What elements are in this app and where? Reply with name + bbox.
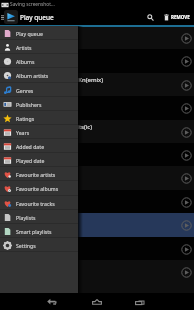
- button[interactable]: Play track: [178, 124, 194, 140]
- staticText: Play queue: [20, 13, 54, 22]
- staticText: Publishers: [16, 101, 42, 108]
- staticText: Playlists: [16, 214, 36, 221]
- staticText: Artist — Album: [5, 226, 41, 233]
- button[interactable]: Smart playlists: [0, 224, 78, 238]
- button[interactable]: Track eight: [0, 190, 194, 213]
- staticText: Artist — Album: [5, 109, 41, 116]
- staticText: Saving screenshot...: [10, 1, 55, 8]
- button[interactable]: Added date: [0, 139, 78, 153]
- button[interactable]: Track two: [0, 49, 194, 73]
- staticText: Artist — Album: [5, 156, 41, 163]
- staticText: Albums: [16, 58, 35, 65]
- button[interactable]: Genres: [0, 83, 78, 97]
- staticText: Artists: [16, 44, 32, 51]
- button[interactable]: Play track: [178, 264, 194, 280]
- button[interactable]: Track ten: [0, 237, 194, 260]
- button[interactable]: Play track: [178, 170, 194, 186]
- staticText: Track six: [5, 146, 30, 154]
- button[interactable]: Track one: [0, 26, 194, 49]
- button[interactable]: Somebody That I Used To Kn(emix): [0, 73, 194, 96]
- button[interactable]: Favourite artists: [0, 167, 78, 181]
- staticText: Played date: [16, 157, 45, 164]
- button[interactable]: Ratings: [0, 111, 78, 125]
- button[interactable]: Open navigation drawer: [0, 9, 4, 25]
- staticText: Track two: [5, 52, 32, 60]
- button[interactable]: Settings: [0, 238, 78, 252]
- button[interactable]: Home: [86, 293, 108, 310]
- button[interactable]: Play track: [178, 241, 194, 257]
- button[interactable]: Track four: [0, 96, 194, 120]
- button[interactable]: Track seven: [0, 166, 194, 190]
- staticText: REMOVE: [171, 14, 190, 20]
- button[interactable]: Playlists: [0, 210, 78, 224]
- button[interactable]: Track nine: [0, 213, 194, 237]
- button[interactable]: Play track: [178, 217, 194, 233]
- staticText: Britney Spears Greatest Hits(ic): [5, 123, 93, 131]
- staticText: Artist — Album: [5, 133, 41, 140]
- staticText: Settings: [16, 242, 36, 249]
- staticText: Ratings: [16, 115, 35, 122]
- button[interactable]: Track six: [0, 143, 194, 166]
- staticText: Added date: [16, 143, 45, 150]
- button[interactable]: Favourite tracks: [0, 196, 78, 210]
- button[interactable]: Played date: [0, 153, 78, 167]
- staticText: Favourite albums: [16, 185, 59, 192]
- staticText: Track ten: [5, 240, 31, 248]
- staticText: Artist — Album: [5, 62, 41, 69]
- button[interactable]: Album artists: [0, 68, 78, 83]
- staticText: Favourite tracks: [16, 200, 55, 207]
- staticText: Artist — Album: [5, 39, 41, 46]
- button[interactable]: Back: [41, 293, 63, 310]
- button[interactable]: Play track: [178, 77, 194, 93]
- button[interactable]: Years: [0, 125, 78, 139]
- button[interactable]: Albums: [0, 54, 78, 68]
- button[interactable]: Track eleven: [0, 260, 194, 283]
- button[interactable]: Recent apps: [129, 293, 151, 310]
- button[interactable]: Play track: [178, 147, 194, 163]
- button[interactable]: Favourite albums: [0, 181, 78, 196]
- staticText: Somebody That I Used To Kn(emix): [5, 76, 104, 84]
- staticText: Smart playlists: [16, 228, 52, 235]
- button[interactable]: Search: [142, 9, 158, 25]
- staticText: Play queue: [16, 30, 43, 37]
- staticText: Track four: [5, 99, 34, 107]
- staticText: Track nine: [5, 216, 34, 224]
- button[interactable]: Publishers: [0, 97, 78, 111]
- button[interactable]: Play track: [178, 194, 194, 210]
- staticText: Track one: [5, 29, 33, 37]
- staticText: Genres: [16, 87, 34, 94]
- button[interactable]: REMOVE: [162, 9, 192, 25]
- staticText: Artist — Album: [5, 86, 41, 93]
- staticText: Album artists: [16, 72, 49, 79]
- button[interactable]: Play track: [178, 30, 194, 46]
- staticText: Track seven: [5, 169, 38, 177]
- staticText: Favourite artists: [16, 171, 56, 178]
- staticText: Artist — Album: [5, 203, 41, 210]
- button[interactable]: Artists: [0, 40, 78, 54]
- button[interactable]: Play queue: [0, 26, 78, 40]
- button[interactable]: Britney Spears Greatest Hits(ic): [0, 120, 194, 143]
- button[interactable]: Play track: [178, 100, 194, 116]
- staticText: Years: [16, 129, 30, 136]
- button[interactable]: Play track: [178, 53, 194, 69]
